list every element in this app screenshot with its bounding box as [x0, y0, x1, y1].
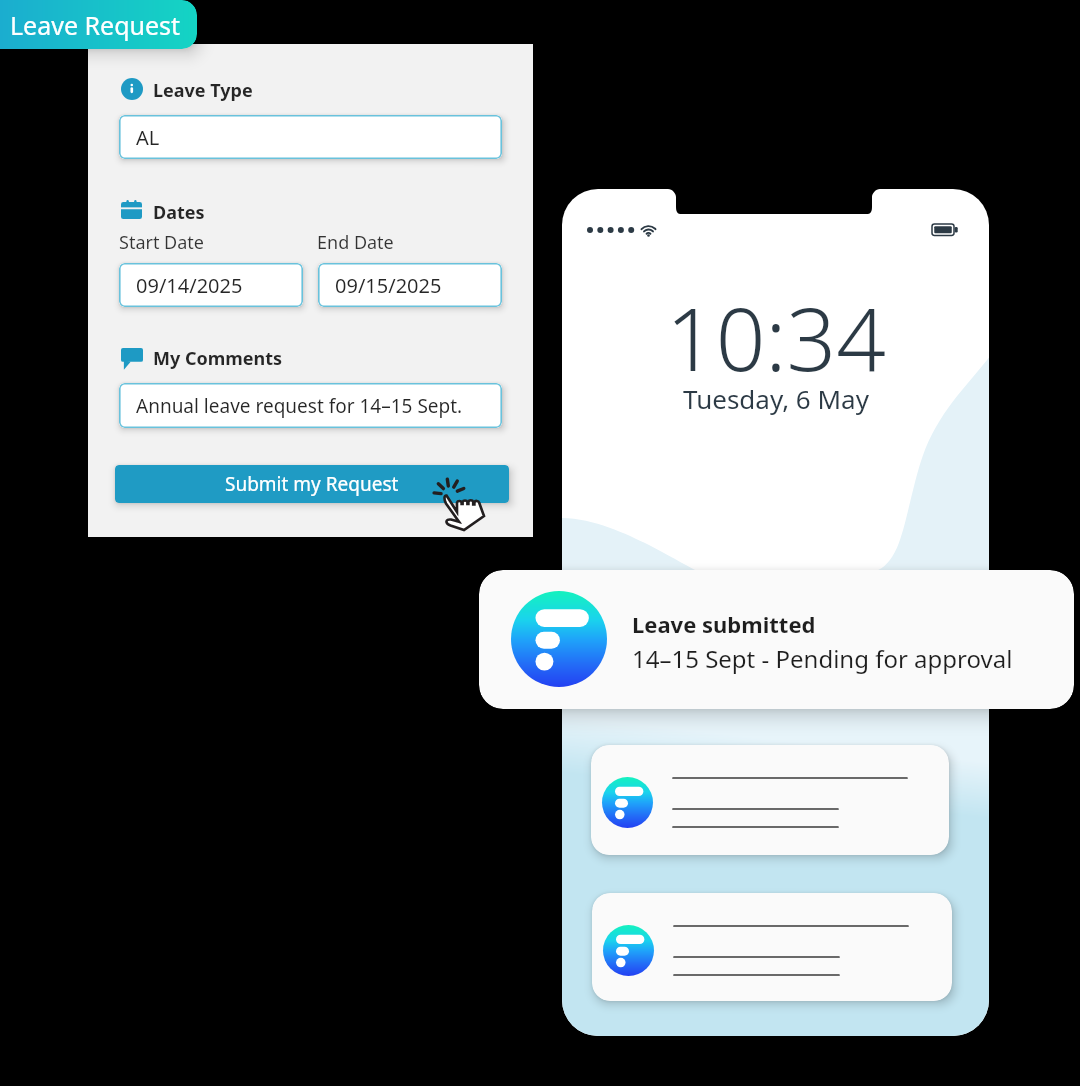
staticText: Leave Request [10, 8, 181, 42]
staticText: Tuesday, 6 May [683, 381, 869, 416]
staticText: Submit my Request [225, 471, 399, 497]
staticText: 09/14/2025 [136, 272, 243, 299]
staticText: Annual leave request for 14–15 Sept. [136, 393, 463, 419]
staticText: Leave submitted [632, 609, 816, 639]
staticText: Leave Type [153, 78, 253, 103]
button[interactable]: AL [119, 115, 502, 159]
staticText: AL [136, 124, 160, 151]
staticText: Start Date [119, 230, 204, 255]
staticText: Dates [153, 200, 205, 225]
staticText: 10:34 [666, 278, 886, 396]
other: Tap to submit [427, 473, 491, 537]
staticText: 14–15 Sept - Pending for approval [632, 642, 1013, 675]
button[interactable] [591, 745, 949, 855]
button[interactable]: Annual leave request for 14–15 Sept. [119, 383, 502, 428]
staticText: End Date [317, 230, 394, 255]
button[interactable]: 09/14/2025 [119, 263, 303, 307]
staticText: 09/15/2025 [335, 272, 442, 299]
button[interactable]: 09/15/2025 [318, 263, 502, 307]
button[interactable]: Leave submitted [479, 570, 1074, 709]
staticText: My Comments [153, 346, 283, 371]
button[interactable]: Leave Request [0, 0, 197, 49]
button[interactable] [592, 893, 952, 1001]
button[interactable]: Submit my Request [115, 465, 509, 503]
